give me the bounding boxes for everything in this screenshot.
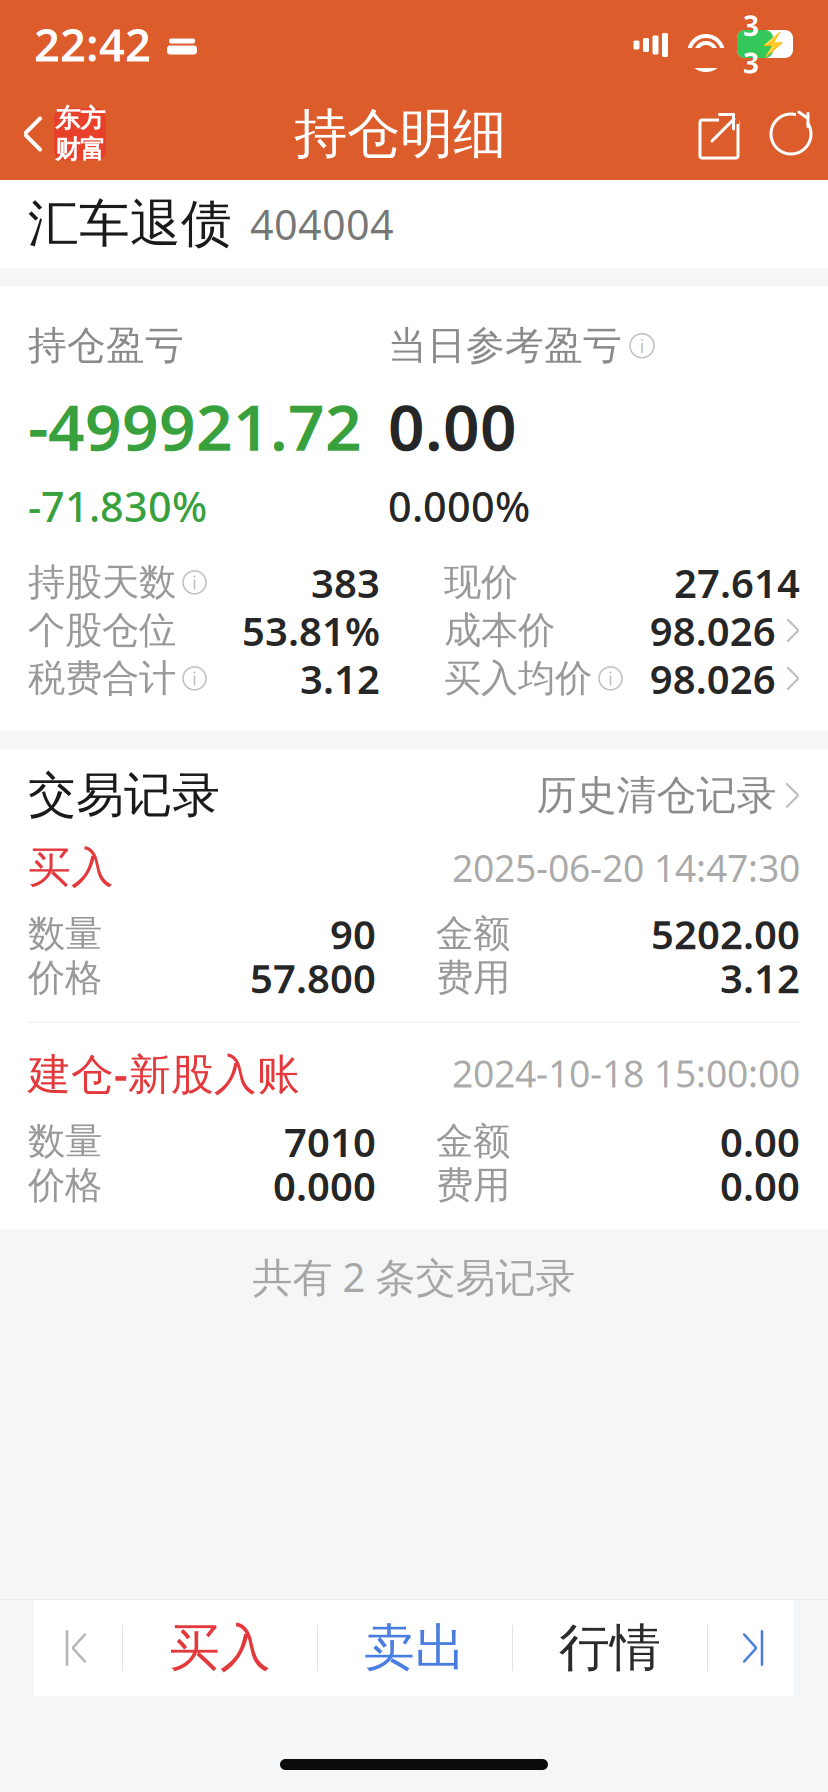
staticText: 财富 xyxy=(55,134,105,165)
staticText: -499921.72 xyxy=(28,383,362,468)
staticText: ⚡ xyxy=(759,31,787,57)
staticText: 东方 xyxy=(55,103,105,134)
button[interactable]: 买入 xyxy=(123,1600,317,1696)
staticText: 现价 xyxy=(444,559,518,605)
staticText: 90 xyxy=(330,907,376,960)
button[interactable]: Refresh xyxy=(754,88,828,180)
staticText: 53.81% xyxy=(242,604,380,657)
staticText: 卖出 xyxy=(364,1617,466,1679)
staticText: 3.12 xyxy=(300,652,380,705)
button[interactable]: Previous xyxy=(34,1600,122,1696)
staticText: i xyxy=(192,666,197,691)
staticText: 404004 xyxy=(250,197,394,251)
staticText: 金额 xyxy=(436,911,510,957)
staticText: 57.800 xyxy=(250,951,376,1004)
staticText: 7010 xyxy=(284,1115,376,1168)
staticText: 0.000 xyxy=(273,1159,376,1212)
staticText: 22:42 xyxy=(34,14,151,74)
staticText: 当日参考盈亏 xyxy=(388,322,622,369)
staticText: 价格 xyxy=(28,1162,102,1208)
staticText: 0.00 xyxy=(720,1159,800,1212)
staticText: 买入 xyxy=(169,1617,271,1679)
button[interactable]: Next xyxy=(708,1600,794,1696)
staticText: 买入均价 xyxy=(444,655,592,701)
staticText: 持股天数 xyxy=(28,559,176,605)
staticText: 2025-06-20 14:47:30 xyxy=(452,843,800,892)
staticText: 3.12 xyxy=(720,951,800,1004)
staticText: 持仓盈亏 xyxy=(28,322,184,369)
staticText: 买入 xyxy=(28,841,114,894)
staticText: 27.614 xyxy=(674,556,800,609)
button[interactable]: 历史清仓记录 xyxy=(537,771,800,820)
staticText: 税费合计 xyxy=(28,655,176,701)
staticText: 费用 xyxy=(436,955,510,1001)
staticText: 0.00 xyxy=(388,383,517,468)
button[interactable]: 行情 xyxy=(513,1600,707,1696)
staticText: 共有 2 条交易记录 xyxy=(252,1250,575,1303)
staticText: 33 xyxy=(743,7,759,81)
button[interactable]: 卖出 xyxy=(318,1600,512,1696)
staticText: 行情 xyxy=(559,1617,661,1679)
staticText: 价格 xyxy=(28,955,102,1001)
staticText: 383 xyxy=(311,556,380,609)
staticText: 5202.00 xyxy=(651,907,800,960)
staticText: 费用 xyxy=(436,1162,510,1208)
staticText: -71.830% xyxy=(28,478,207,533)
staticText: 金额 xyxy=(436,1118,510,1164)
staticText: i xyxy=(608,666,613,691)
staticText: 2024-10-18 15:00:00 xyxy=(452,1048,800,1098)
staticText: 98.026 xyxy=(650,652,776,705)
staticText: 个股仓位 xyxy=(28,607,176,653)
button[interactable]: Back xyxy=(0,88,116,180)
staticText: 数量 xyxy=(28,911,102,957)
staticText: 98.026 xyxy=(650,604,776,657)
staticText: 历史清仓记录 xyxy=(537,771,777,820)
staticText: 建仓-新股入账 xyxy=(28,1045,300,1101)
staticText: 数量 xyxy=(28,1118,102,1164)
staticText: 持仓明细 xyxy=(294,101,506,167)
staticText: 0.00 xyxy=(720,1115,800,1168)
staticText: 成本价 xyxy=(444,607,555,653)
staticText: 交易记录 xyxy=(28,766,220,825)
staticText: 0.000% xyxy=(388,478,530,533)
staticText: i xyxy=(639,333,644,358)
button[interactable]: Share xyxy=(684,88,754,180)
staticText: i xyxy=(192,570,197,595)
staticText: 汇车退债 xyxy=(28,193,232,255)
